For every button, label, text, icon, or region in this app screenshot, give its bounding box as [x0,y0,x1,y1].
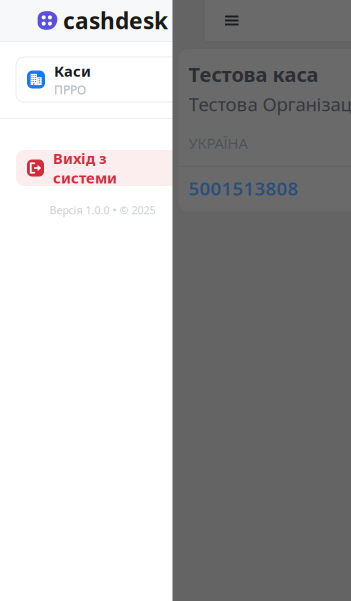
staticText: 5001513808 [188,176,298,201]
button[interactable]: Вихід з системи [16,150,190,186]
staticText: Каси [54,61,91,81]
staticText: ПРРО [54,82,86,98]
staticText: Тестова Організація [188,92,351,116]
staticText: Вихід з системи [53,148,117,187]
button[interactable]: Каси [16,57,190,102]
staticText: cashdesk [63,5,168,35]
staticText: Тестова каса [188,61,318,88]
staticText: УКРАЇНА [188,133,247,153]
staticText: Версія 1.0.0 • © 2025 [49,203,155,217]
button[interactable]: Menu [218,5,245,36]
